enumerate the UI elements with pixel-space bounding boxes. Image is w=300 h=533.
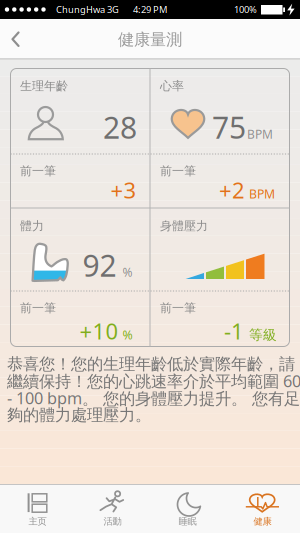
staticText: 28 — [103, 107, 137, 147]
staticText: 等級 — [249, 326, 277, 344]
staticText: 恭喜您！您的生理年齡低於實際年齡，請 — [7, 354, 295, 374]
staticText: 夠的體力處理壓力。 — [7, 405, 151, 425]
staticText: 前一筆 — [20, 300, 56, 315]
staticText: % — [122, 264, 132, 280]
staticText: -1 — [224, 316, 244, 346]
staticText: 前一筆 — [160, 300, 196, 315]
staticText: BPM — [249, 185, 275, 202]
staticText: 身體壓力 — [160, 218, 208, 233]
staticText: 92 — [82, 245, 116, 285]
button[interactable]: 主页 — [0, 484, 75, 533]
staticText: ChungHwa 3G — [56, 3, 119, 16]
staticText: 健康 — [253, 516, 271, 527]
staticText: 健康量測 — [118, 29, 182, 50]
button[interactable]: 健康 — [225, 484, 300, 533]
staticText: 4:29 PM — [133, 3, 167, 16]
staticText: % — [122, 326, 132, 343]
button[interactable]: Back — [0, 19, 30, 58]
staticText: - 100 bpm。 您的身體壓力提升。 您有足 — [7, 387, 300, 409]
staticText: 心率 — [160, 78, 184, 93]
staticText: 100% — [234, 3, 257, 16]
button[interactable]: 睡眠 — [150, 484, 225, 533]
staticText: BPM — [247, 126, 273, 142]
staticText: 75 — [212, 107, 246, 147]
staticText: 生理年齡 — [20, 78, 68, 93]
staticText: 前一筆 — [20, 163, 56, 178]
staticText: +10 — [79, 316, 118, 346]
button[interactable]: 活動 — [75, 484, 150, 533]
staticText: 前一筆 — [160, 163, 196, 178]
staticText: +3 — [110, 175, 136, 205]
staticText: 繼續保持！您的心跳速率介於平均範圍 60 — [7, 370, 300, 392]
staticText: +2 — [219, 175, 245, 205]
staticText: 活動 — [103, 516, 121, 527]
staticText: 睡眠 — [178, 516, 196, 527]
staticText: 主页 — [28, 516, 46, 527]
staticText: 體力 — [20, 218, 44, 233]
